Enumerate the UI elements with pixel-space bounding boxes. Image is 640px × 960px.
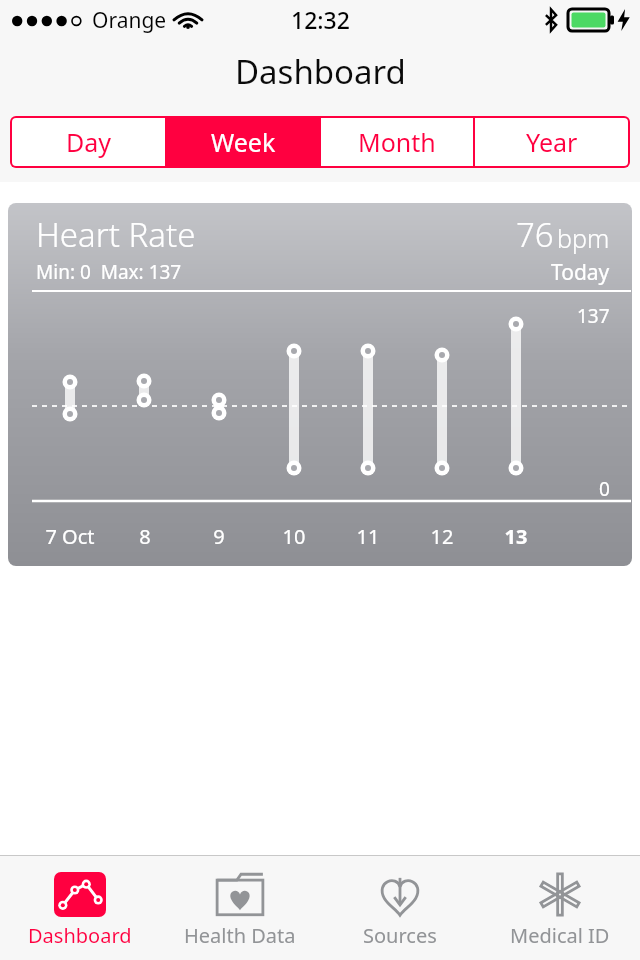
staticText: 13	[476, 523, 556, 550]
staticText: Month	[358, 125, 436, 159]
staticText: Week	[211, 125, 276, 159]
staticText: 76	[516, 212, 554, 257]
staticText: Orange	[92, 6, 167, 35]
button[interactable]: Month	[321, 118, 473, 166]
button[interactable]: Heart Rate	[8, 203, 632, 566]
staticText: Dashboard	[235, 49, 406, 94]
staticText: 9	[179, 523, 259, 550]
staticText: bpm	[557, 221, 610, 255]
staticText: Medical ID	[510, 922, 610, 949]
staticText: Year	[526, 125, 578, 159]
button[interactable]: Day	[12, 118, 165, 166]
button[interactable]: Year	[475, 118, 628, 166]
button[interactable]: Medical ID	[480, 856, 640, 960]
staticText: 0	[599, 476, 610, 502]
staticText: Sources	[363, 922, 437, 949]
staticText: Health Data	[184, 922, 296, 949]
staticText: 8	[105, 523, 185, 550]
staticText: Min: 0 Max: 137	[36, 259, 182, 285]
staticText: 10	[254, 523, 334, 550]
staticText: Today	[551, 258, 610, 287]
staticText: 11	[328, 523, 408, 550]
button[interactable]: Week	[167, 118, 319, 166]
staticText: 7 Oct	[30, 523, 110, 550]
button[interactable]: Dashboard	[0, 856, 160, 960]
staticText: 137	[577, 303, 610, 329]
staticText: 12	[402, 523, 482, 550]
staticText: Dashboard	[28, 922, 132, 949]
button[interactable]: Sources	[320, 856, 480, 960]
staticText: 12:32	[291, 4, 350, 35]
staticText: Heart Rate	[36, 212, 196, 257]
staticText: Day	[66, 125, 112, 159]
button[interactable]: Health Data	[160, 856, 320, 960]
